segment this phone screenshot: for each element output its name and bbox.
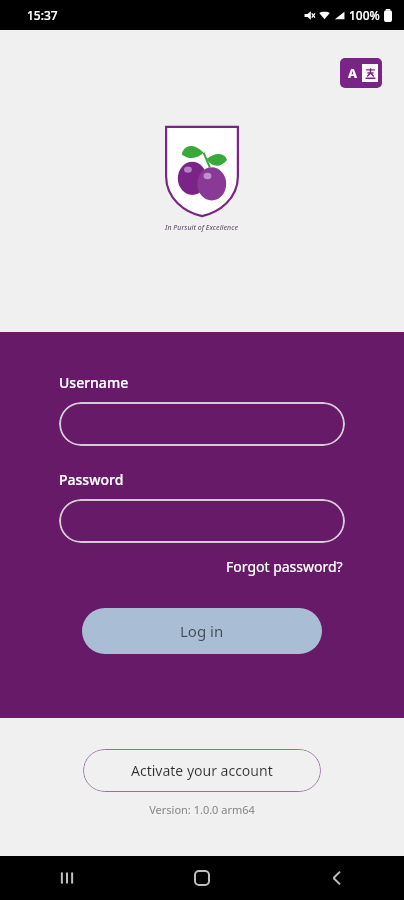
staticText: Activate your account [131, 761, 273, 780]
button[interactable]: Back [269, 856, 404, 900]
staticText: In Pursuit of Excellence [165, 223, 239, 233]
button[interactable]: Password input [59, 499, 345, 543]
staticText: Log in [180, 621, 224, 641]
staticText: Forgot password? [226, 557, 343, 576]
button[interactable]: Log in [82, 608, 322, 654]
button[interactable]: Username input [59, 402, 345, 446]
staticText: Password [59, 470, 124, 489]
button[interactable]: Change language [340, 58, 382, 88]
staticText: A [348, 64, 357, 82]
staticText: Username [59, 373, 129, 392]
staticText: Version: 1.0.0 arm64 [149, 802, 255, 817]
button[interactable]: Forgot password? [224, 555, 345, 578]
button[interactable]: Recent apps [0, 856, 134, 900]
staticText: 15:37 [27, 7, 58, 23]
button[interactable]: Activate your account [83, 749, 321, 792]
button[interactable]: Home [134, 856, 269, 900]
staticText: 100% [349, 7, 380, 23]
